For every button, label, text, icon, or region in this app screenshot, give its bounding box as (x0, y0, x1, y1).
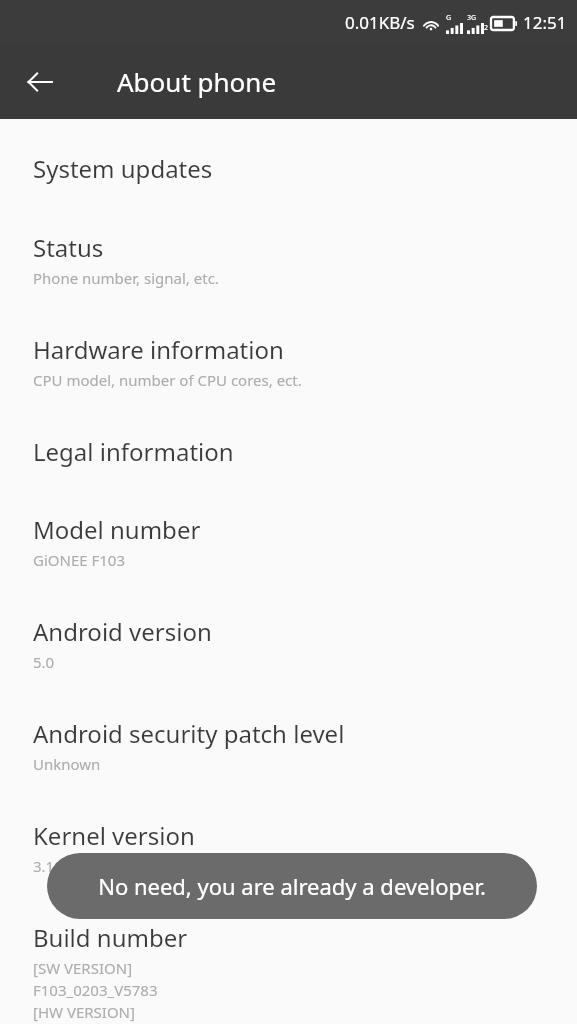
staticText: 3.10.65+ (33, 856, 93, 876)
staticText: System updates (33, 152, 213, 185)
staticText: G (446, 13, 452, 23)
staticText: Model number (33, 513, 201, 546)
button[interactable]: Legal information (0, 390, 577, 468)
button[interactable]: Android security patch level (0, 672, 577, 774)
staticText: 3G (467, 13, 477, 23)
staticText: Legal information (33, 435, 234, 468)
button[interactable]: Model number (0, 468, 577, 570)
button[interactable]: Kernel version (0, 774, 577, 876)
staticText: Unknown (33, 754, 101, 774)
staticText: 12:51 (523, 11, 567, 34)
staticText: Android security patch level (33, 717, 345, 750)
staticText: Kernel version (33, 819, 195, 852)
staticText: 2 (484, 23, 489, 33)
staticText: Android version (33, 615, 212, 648)
staticText: GiONEE F103 (33, 550, 126, 570)
staticText: Build number (33, 921, 188, 954)
staticText: [SW VERSION] F103_0203_V5783 [HW VERSION… (33, 958, 175, 1024)
button[interactable]: Back (18, 60, 62, 104)
staticText: 5.0 (33, 652, 55, 672)
button[interactable]: Build number (0, 876, 577, 1024)
button[interactable]: Hardware information (0, 288, 577, 390)
staticText: Hardware information (33, 333, 284, 366)
staticText: Phone number, signal, etc. (33, 268, 219, 288)
staticText: CPU model, number of CPU cores, ect. (33, 370, 302, 390)
button[interactable]: Android version (0, 570, 577, 672)
button[interactable]: Status (0, 185, 577, 288)
staticText: 0.01KB/s (345, 11, 415, 34)
staticText: No need, you are already a developer. (98, 871, 486, 901)
staticText: Status (33, 231, 104, 264)
staticText: About phone (117, 64, 277, 99)
button[interactable]: System updates (0, 119, 577, 185)
